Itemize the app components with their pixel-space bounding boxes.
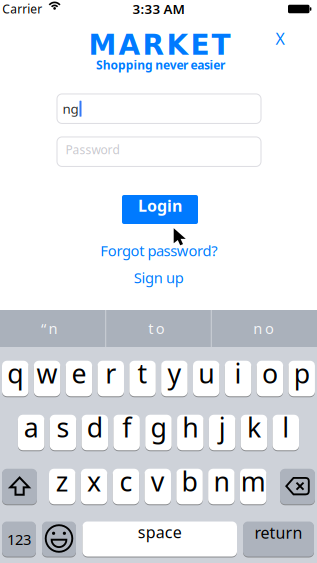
staticText: r — [105, 355, 116, 391]
button[interactable]: e — [66, 361, 92, 397]
staticText: space — [138, 521, 182, 543]
staticText: c — [119, 463, 132, 499]
button[interactable]: return — [243, 521, 314, 557]
button[interactable]: Password text field — [57, 137, 261, 166]
button[interactable]: w — [34, 361, 60, 397]
staticText: Shopping never easier — [96, 57, 225, 73]
button[interactable]: d — [82, 415, 108, 451]
staticText: l — [282, 409, 289, 445]
button[interactable]: “n — [0, 310, 101, 347]
staticText: 123 — [7, 530, 31, 549]
staticText: x — [87, 463, 101, 499]
button[interactable]: j — [209, 415, 235, 451]
button[interactable]: g — [145, 415, 172, 451]
button[interactable]: Username text field — [57, 94, 261, 123]
button[interactable]: k — [241, 415, 267, 451]
staticText: no — [253, 319, 274, 338]
staticText: g — [150, 409, 166, 445]
button[interactable]: h — [177, 415, 203, 451]
staticText: Forgot password? — [100, 241, 217, 260]
button[interactable]: Forgot password? — [100, 241, 217, 260]
staticText: Password — [65, 142, 119, 158]
staticText: d — [87, 409, 103, 445]
staticText: e — [71, 355, 86, 391]
button[interactable]: Emoji — [42, 521, 76, 557]
staticText: to — [148, 319, 165, 338]
staticText: 3:33 AM — [132, 0, 184, 18]
staticText: j — [219, 409, 226, 445]
staticText: f — [122, 409, 131, 445]
button[interactable]: z — [49, 469, 75, 505]
staticText: y — [167, 355, 181, 391]
button[interactable]: Close — [275, 28, 284, 49]
staticText: Login — [138, 195, 182, 216]
button[interactable]: Login — [122, 195, 198, 224]
staticText: q — [7, 355, 23, 391]
button[interactable]: to — [104, 310, 208, 347]
staticText: a — [24, 409, 39, 445]
staticText: i — [235, 355, 242, 391]
staticText: k — [247, 409, 261, 445]
button[interactable]: Delete — [280, 469, 315, 505]
staticText: Sign up — [134, 268, 184, 287]
button[interactable]: n — [208, 469, 235, 505]
staticText: z — [56, 463, 69, 499]
button[interactable]: l — [272, 415, 299, 451]
staticText: h — [182, 409, 198, 445]
button[interactable]: no — [212, 310, 316, 347]
staticText: v — [151, 463, 165, 499]
button[interactable]: v — [144, 469, 171, 505]
button[interactable]: s — [50, 415, 76, 451]
staticText: Carrier — [2, 1, 42, 17]
button[interactable]: Shift — [2, 469, 37, 505]
button[interactable]: t — [129, 361, 156, 397]
button[interactable]: f — [113, 415, 140, 451]
staticText: MARKET — [88, 29, 230, 61]
staticText: b — [182, 463, 198, 499]
button[interactable]: 123 — [2, 521, 36, 557]
staticText: u — [198, 355, 214, 391]
button[interactable]: y — [161, 361, 188, 397]
staticText: ng — [62, 100, 78, 117]
button[interactable]: space — [82, 521, 237, 557]
button[interactable]: Sign up — [134, 268, 184, 287]
button[interactable]: x — [81, 469, 107, 505]
button[interactable]: b — [176, 469, 203, 505]
button[interactable]: i — [225, 361, 251, 397]
staticText: w — [37, 355, 58, 391]
staticText: X — [275, 28, 284, 49]
staticText: n — [213, 463, 229, 499]
button[interactable]: r — [97, 361, 124, 397]
button[interactable]: a — [18, 415, 44, 451]
button[interactable]: m — [240, 469, 266, 505]
button[interactable]: c — [113, 469, 139, 505]
button[interactable]: q — [2, 361, 28, 397]
staticText: m — [241, 463, 266, 499]
button[interactable]: p — [288, 361, 315, 397]
button[interactable]: u — [193, 361, 219, 397]
staticText: o — [262, 355, 278, 391]
staticText: s — [56, 409, 69, 445]
staticText: p — [294, 355, 310, 391]
button[interactable]: o — [257, 361, 283, 397]
staticText: “n — [41, 319, 58, 338]
staticText: t — [138, 355, 148, 391]
staticText: return — [254, 522, 302, 543]
